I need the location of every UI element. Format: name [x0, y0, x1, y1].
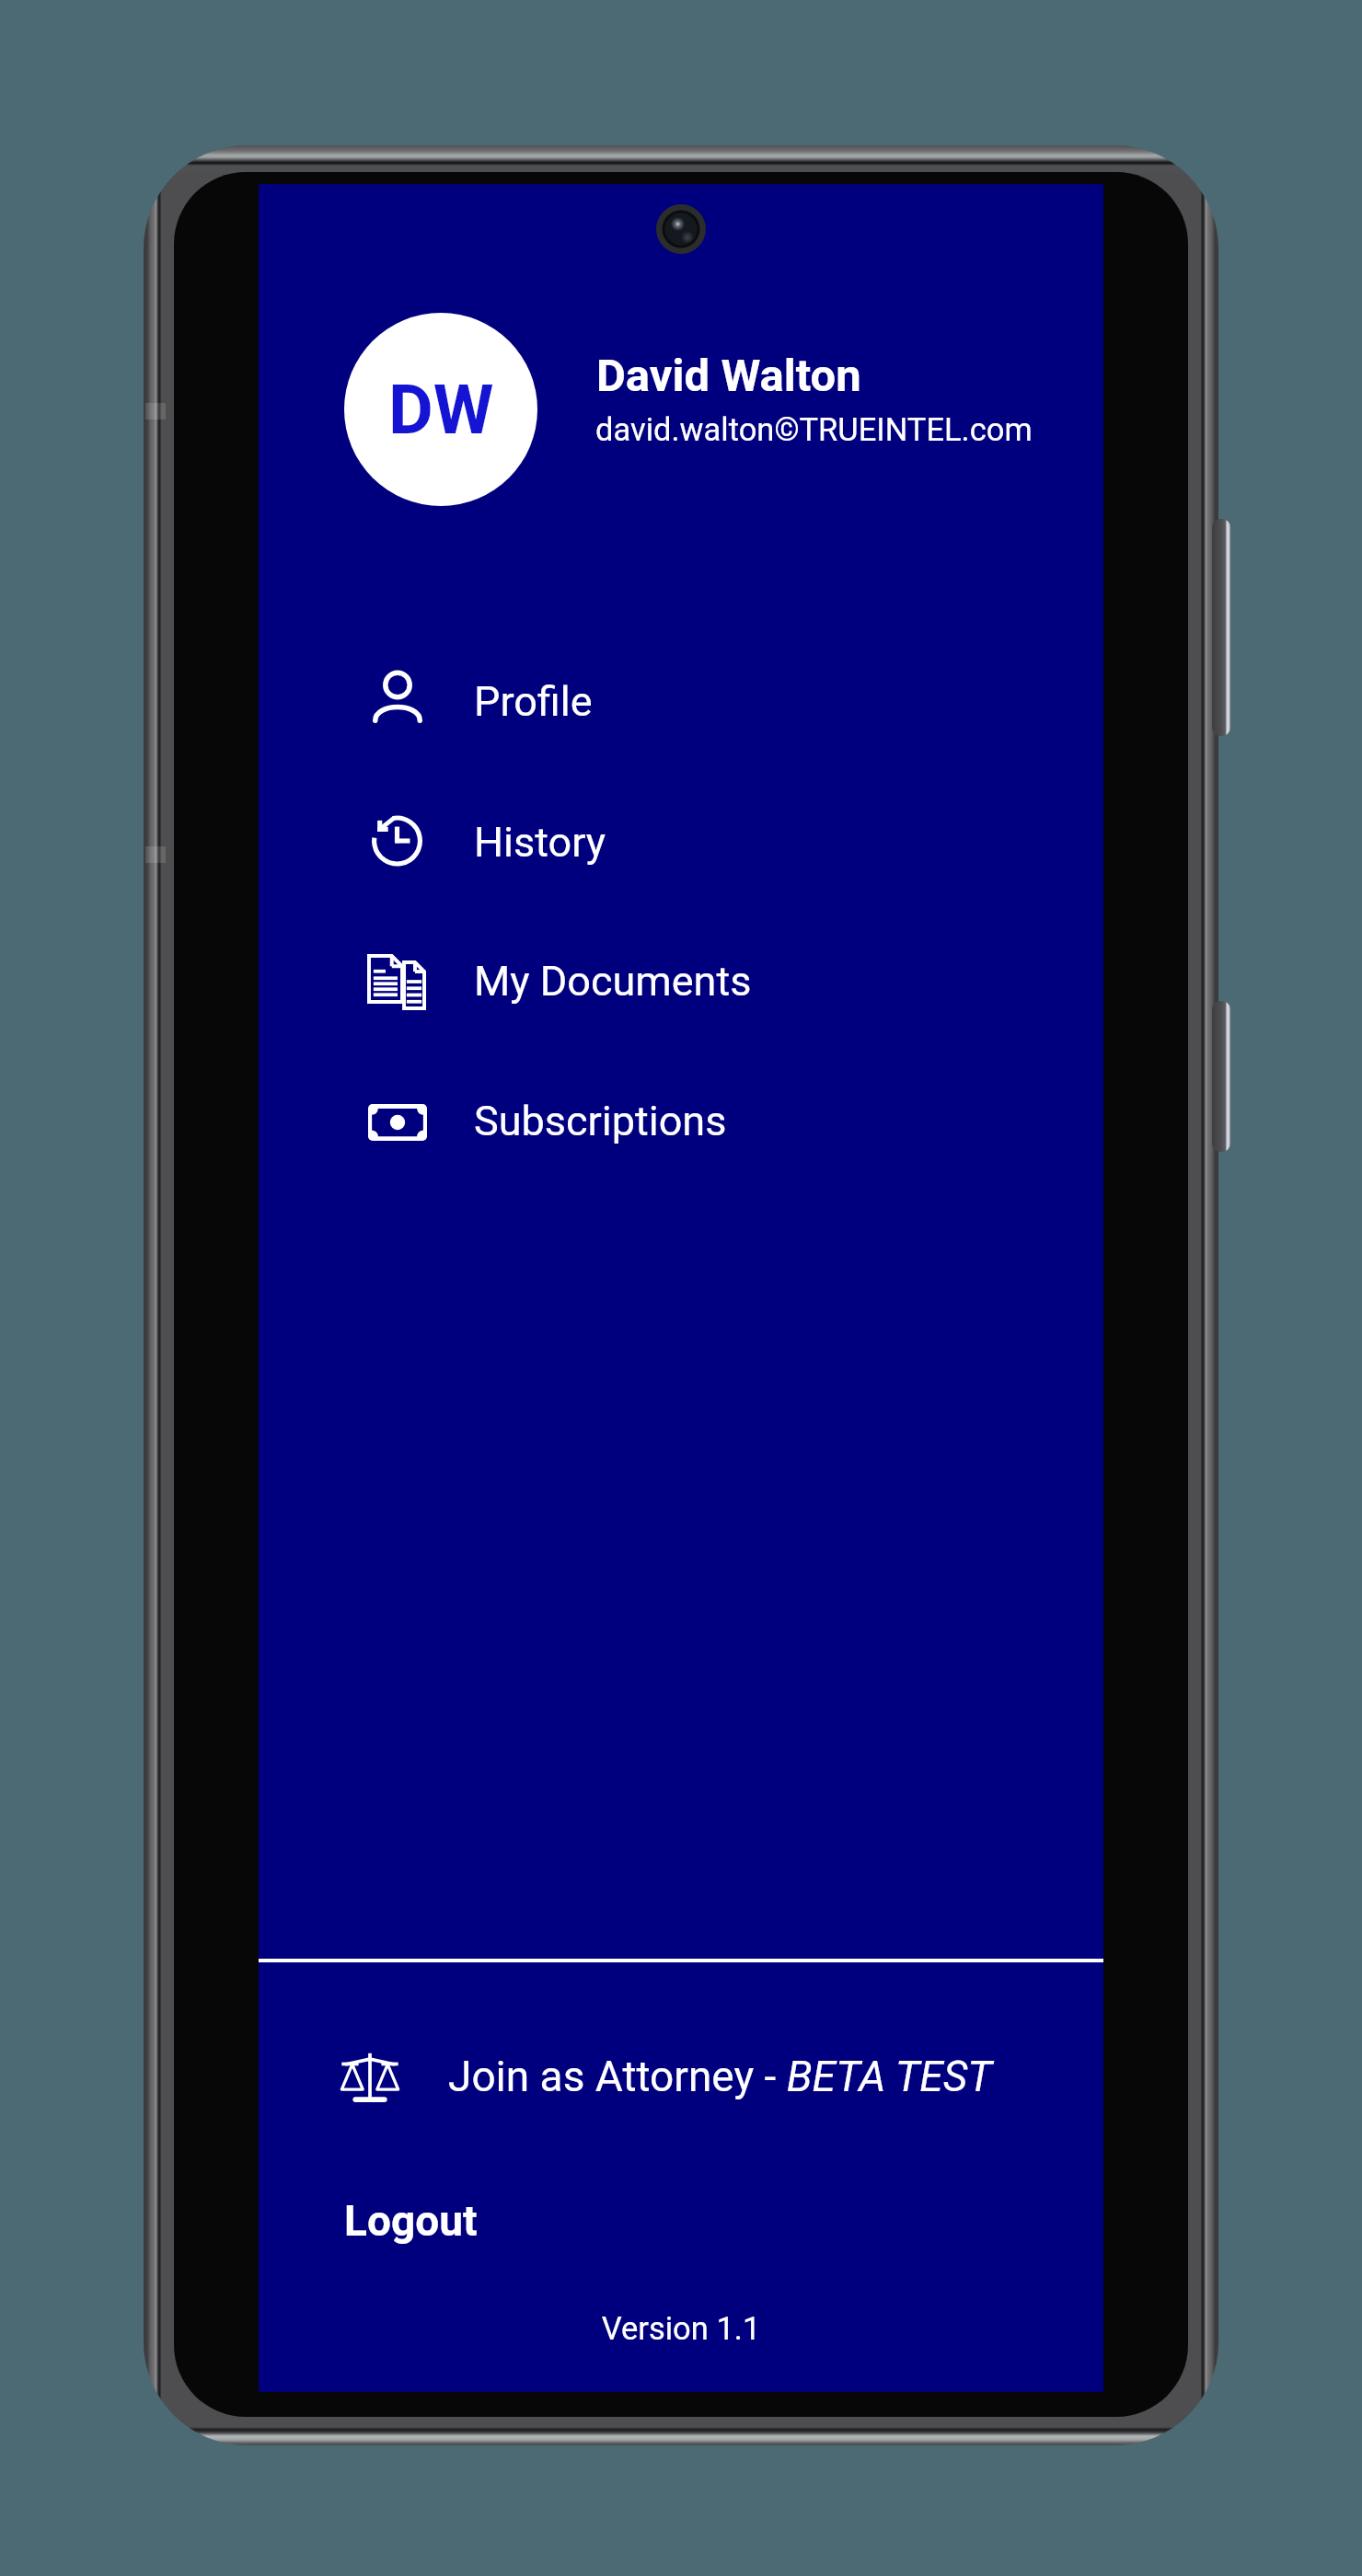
staticText: David Walton: [596, 350, 861, 402]
button[interactable]: Logout: [259, 2167, 1103, 2275]
button[interactable]: History: [259, 772, 1103, 912]
button[interactable]: Subscriptions: [259, 1051, 1103, 1190]
staticText: History: [474, 818, 606, 867]
staticText: david.walton©TRUEINTEL.com: [595, 411, 1033, 448]
button[interactable]: Profile photo: [344, 313, 537, 506]
staticText: Subscriptions: [474, 1097, 727, 1145]
staticText: Profile: [474, 677, 593, 726]
staticText: DW: [388, 369, 494, 450]
button[interactable]: Join as Attorney - BETA TEST: [336, 2041, 992, 2111]
button[interactable]: Profile: [259, 631, 1103, 771]
staticText: Logout: [344, 2196, 478, 2246]
staticText: My Documents: [474, 957, 752, 1006]
staticText: Version 1.1: [259, 2310, 1103, 2347]
button[interactable]: My Documents: [259, 911, 1103, 1051]
staticText: Join as Attorney - BETA TEST: [448, 2052, 992, 2101]
